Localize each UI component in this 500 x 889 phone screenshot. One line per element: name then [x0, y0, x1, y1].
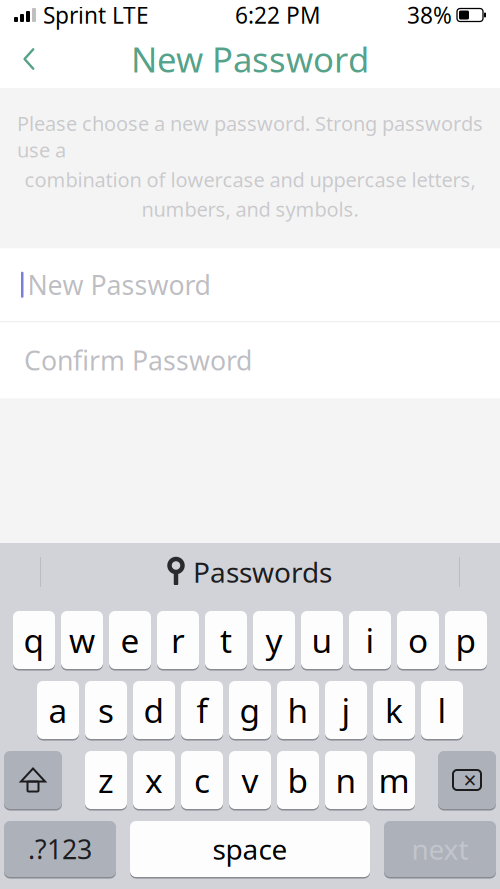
staticText: s — [98, 688, 114, 732]
button[interactable]: t — [205, 611, 247, 669]
button[interactable]: .?123 — [4, 821, 116, 877]
button[interactable]: Confirm Password — [0, 322, 500, 398]
button[interactable]: h — [277, 681, 319, 739]
staticText: f — [196, 688, 207, 732]
staticText: n — [335, 758, 356, 802]
button[interactable]: y — [253, 611, 295, 669]
staticText: o — [408, 618, 428, 662]
button[interactable]: d — [133, 681, 175, 739]
staticText: Confirm Password — [24, 342, 252, 378]
staticText: g — [239, 688, 260, 732]
staticText: l — [437, 688, 446, 732]
button[interactable]: u — [301, 611, 343, 669]
staticText: 6:22 PM — [235, 0, 321, 30]
button[interactable]: v — [229, 751, 271, 809]
staticText: i — [365, 618, 374, 662]
staticText: 38% — [407, 0, 452, 30]
staticText: space — [212, 830, 287, 868]
button[interactable]: b — [277, 751, 319, 809]
button[interactable]: o — [397, 611, 439, 669]
staticText: e — [120, 618, 139, 662]
button[interactable]: m — [373, 751, 415, 809]
button[interactable]: n — [325, 751, 367, 809]
button[interactable]: q — [13, 611, 55, 669]
button[interactable]: next — [384, 821, 496, 877]
staticText: Sprint LTE — [43, 0, 149, 30]
staticText: z — [98, 758, 114, 802]
staticText: New Password — [131, 36, 369, 82]
button[interactable]: Passwords — [0, 543, 500, 601]
button[interactable]: Shift — [4, 751, 62, 809]
button[interactable]: l — [421, 681, 463, 739]
staticText: t — [220, 618, 232, 662]
staticText: x — [145, 758, 163, 802]
button[interactable]: g — [229, 681, 271, 739]
button[interactable]: x — [133, 751, 175, 809]
staticText: j — [341, 688, 350, 732]
staticText: .?123 — [28, 831, 92, 867]
button[interactable]: a — [37, 681, 79, 739]
staticText: b — [287, 758, 308, 802]
button[interactable]: f — [181, 681, 223, 739]
button[interactable]: c — [181, 751, 223, 809]
staticText: a — [48, 688, 67, 732]
button[interactable]: z — [85, 751, 127, 809]
staticText: v — [241, 758, 258, 802]
button[interactable]: w — [61, 611, 103, 669]
staticText: k — [385, 688, 403, 732]
button[interactable]: r — [157, 611, 199, 669]
staticText: h — [287, 688, 308, 732]
staticText: u — [311, 618, 332, 662]
button[interactable]: i — [349, 611, 391, 669]
button[interactable]: s — [85, 681, 127, 739]
button[interactable]: p — [445, 611, 487, 669]
staticText: p — [455, 618, 476, 662]
button[interactable]: e — [109, 611, 151, 669]
staticText: numbers, and symbols. — [141, 196, 358, 222]
staticText: New Password — [27, 267, 210, 302]
button[interactable]: j — [325, 681, 367, 739]
button[interactable]: Back — [0, 30, 58, 88]
staticText: next — [411, 830, 468, 868]
staticText: combination of lowercase and uppercase l… — [24, 166, 475, 193]
staticText: q — [23, 618, 44, 662]
button[interactable]: k — [373, 681, 415, 739]
staticText: Passwords — [193, 553, 332, 591]
staticText: w — [69, 618, 95, 662]
button[interactable]: Delete — [438, 751, 496, 809]
staticText: m — [378, 758, 409, 802]
staticText: c — [194, 758, 210, 802]
staticText: d — [143, 688, 164, 732]
staticText: y — [265, 618, 282, 662]
staticText: r — [171, 618, 185, 662]
button[interactable]: space — [130, 821, 370, 877]
button[interactable]: New Password — [0, 248, 500, 321]
staticText: Please choose a new password. Strong pas… — [17, 110, 483, 163]
staticText: × — [463, 765, 476, 795]
